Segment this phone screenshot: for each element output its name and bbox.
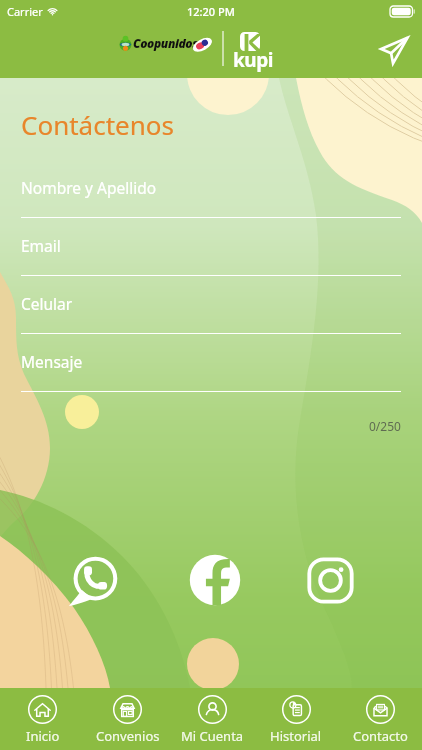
staticText: Contáctenos — [21, 107, 174, 142]
button[interactable]: Celular — [21, 293, 401, 351]
button[interactable]: Mi Cuenta — [170, 688, 254, 750]
staticText: Mi Cuenta — [181, 727, 244, 745]
staticText: Inicio — [26, 727, 60, 745]
staticText: Carrier — [7, 4, 43, 19]
staticText: Nombre y Apellido — [21, 177, 157, 198]
button[interactable]: Instagram — [304, 554, 357, 607]
button[interactable]: Mensaje — [21, 351, 401, 409]
button[interactable]: Historial — [254, 688, 338, 750]
button[interactable]: Facebook — [187, 552, 243, 608]
button[interactable]: Nombre y Apellido — [21, 177, 401, 235]
staticText: Celular — [21, 293, 73, 314]
staticText: 0/250 — [369, 418, 401, 434]
staticText: Historial — [270, 727, 322, 745]
button[interactable]: Inicio — [0, 688, 85, 750]
button[interactable]: WhatsApp — [66, 554, 120, 608]
staticText: Mensaje — [21, 351, 83, 372]
button[interactable]: Contacto — [338, 688, 422, 750]
staticText: Contacto — [353, 727, 408, 745]
button[interactable]: Email — [21, 235, 401, 293]
staticText: Convenios — [96, 727, 160, 745]
staticText: 12:20 PM — [187, 4, 235, 19]
staticText: Email — [21, 235, 61, 256]
staticText: kupi — [233, 47, 273, 73]
button[interactable]: Enviar — [376, 32, 412, 68]
staticText: Coopunidos — [133, 35, 198, 51]
button[interactable]: Convenios — [85, 688, 170, 750]
